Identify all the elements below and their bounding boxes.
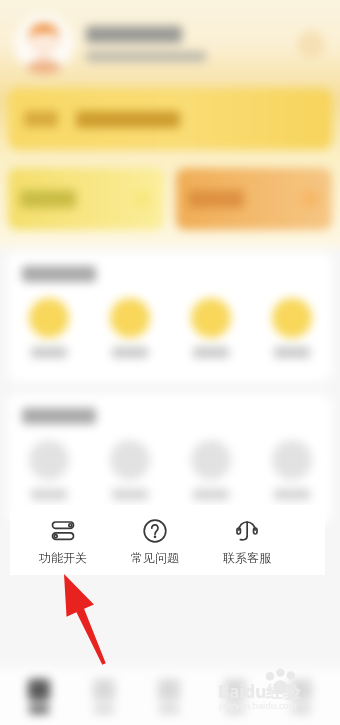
staticText: jingyan.baidu.com — [219, 699, 297, 711]
staticText: Baidu经验 — [218, 680, 301, 703]
button[interactable] — [202, 679, 268, 714]
staticText: 联系客服 — [223, 550, 271, 565]
staticText: 常见问题 — [131, 550, 179, 565]
button[interactable] — [89, 298, 170, 358]
button[interactable] — [136, 679, 202, 714]
button[interactable]: 常见问题 — [120, 514, 190, 565]
button[interactable] — [170, 298, 251, 358]
button[interactable] — [71, 679, 136, 714]
button[interactable]: 联系客服 — [212, 514, 282, 565]
button[interactable] — [176, 168, 332, 230]
button[interactable] — [8, 88, 332, 150]
button[interactable] — [89, 440, 170, 500]
button[interactable]: 设置 — [296, 29, 326, 59]
button[interactable] — [8, 298, 89, 358]
button[interactable] — [251, 298, 332, 358]
button[interactable] — [268, 679, 334, 714]
button[interactable]: 功能开关 — [28, 514, 98, 565]
button[interactable] — [6, 679, 71, 714]
staticText: 功能开关 — [39, 550, 87, 565]
button[interactable] — [170, 440, 251, 500]
button[interactable] — [8, 440, 89, 500]
button[interactable] — [8, 168, 164, 230]
button[interactable] — [14, 14, 74, 74]
button[interactable] — [251, 440, 332, 500]
